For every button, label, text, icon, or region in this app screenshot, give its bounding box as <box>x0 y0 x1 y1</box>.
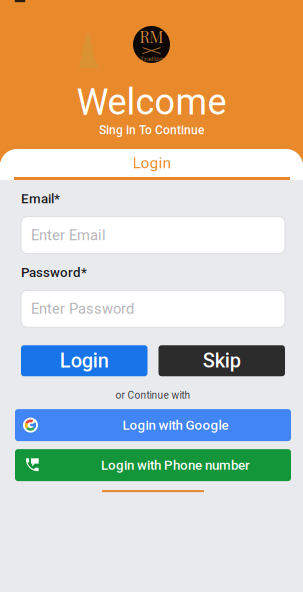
button[interactable]: Login with Phone number <box>15 449 291 481</box>
staticText: Password* <box>21 265 87 280</box>
button[interactable]: Login <box>0 149 303 180</box>
staticText: RM <box>139 26 163 47</box>
button[interactable]: Skip <box>158 345 285 376</box>
staticText: Trading <box>140 54 163 62</box>
button[interactable]: Login <box>21 345 147 376</box>
staticText: Email* <box>21 191 60 207</box>
button[interactable]: Login with Google <box>15 409 291 441</box>
staticText: Sing in To Continue <box>99 123 204 137</box>
staticText: Skip <box>203 349 241 372</box>
staticText: Welcome <box>76 81 226 123</box>
staticText: Enter Email <box>31 226 106 244</box>
staticText: Login <box>60 349 109 372</box>
staticText: Login with Google <box>122 417 228 433</box>
staticText: Enter Password <box>31 300 134 317</box>
staticText: or Continue with <box>115 389 190 401</box>
staticText: Login with Phone number <box>101 457 250 473</box>
staticText: Login <box>132 154 170 172</box>
